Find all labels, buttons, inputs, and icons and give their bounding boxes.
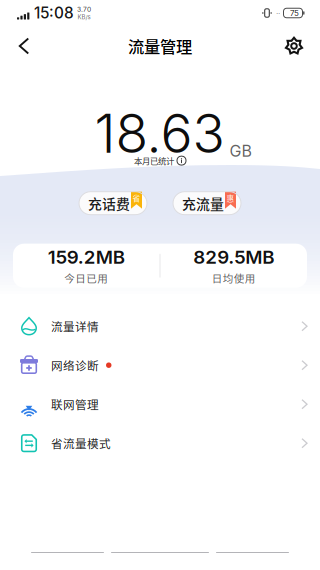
staticText: 15:08 — [34, 4, 74, 22]
button[interactable]: 省流量模式 — [0, 424, 320, 463]
staticText: 今日已用 — [64, 270, 108, 286]
button[interactable]: 联网管理 — [0, 385, 320, 424]
staticText: 本月已统计 — [134, 154, 174, 167]
button[interactable]: 流量详情 — [0, 307, 320, 346]
staticText: 18.63 — [94, 101, 224, 165]
staticText: 3.70 — [77, 5, 91, 13]
staticText: 省流量模式 — [51, 435, 111, 452]
staticText: 829.5MB — [193, 246, 274, 268]
staticText: 充话费 — [88, 193, 130, 213]
staticText: ·· — [276, 8, 280, 18]
staticText: GB — [229, 141, 251, 161]
staticText: 流量详情 — [51, 318, 99, 335]
staticText: 省 — [132, 193, 140, 204]
staticText: 流量管理 — [128, 34, 192, 58]
staticText: 75 — [290, 8, 299, 18]
button[interactable]: 网络诊断 — [0, 346, 320, 385]
button[interactable]: Back — [4, 26, 44, 66]
button[interactable]: 充话费 — [79, 192, 147, 215]
button[interactable]: 充流量 — [173, 192, 241, 215]
staticText: 惠 — [226, 193, 234, 204]
button[interactable]: Settings — [274, 26, 314, 66]
staticText: 日均使用 — [212, 270, 256, 286]
staticText: 159.2MB — [48, 246, 125, 268]
staticText: KB/s — [77, 13, 90, 21]
staticText: 联网管理 — [51, 396, 99, 413]
staticText: 充流量 — [182, 193, 224, 213]
staticText: 网络诊断 — [51, 357, 99, 374]
